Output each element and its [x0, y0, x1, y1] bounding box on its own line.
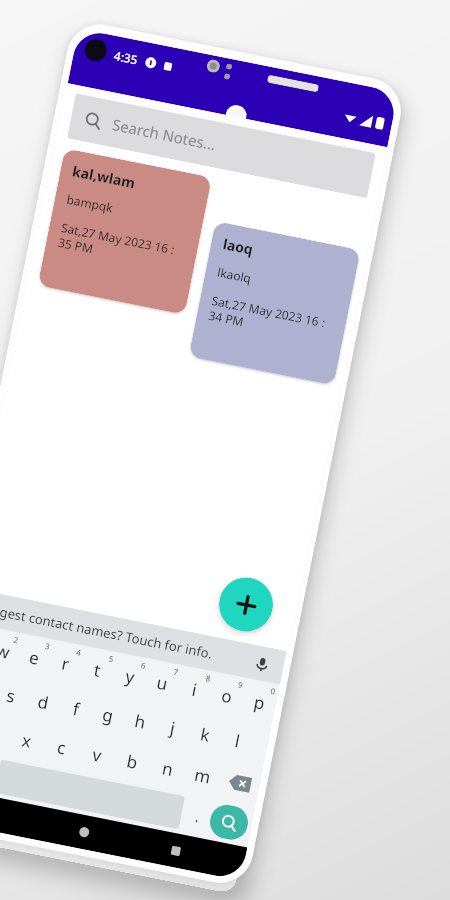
button[interactable]: m [181, 752, 224, 798]
button[interactable]: laoq [188, 221, 361, 385]
staticText: 2 [13, 634, 20, 645]
button[interactable]: Home [75, 823, 94, 841]
staticText: 5 [108, 653, 115, 664]
staticText: e [27, 645, 42, 670]
staticText: bampqk [65, 191, 115, 215]
staticText: l [233, 729, 242, 753]
button[interactable]: c [40, 724, 83, 770]
other: Voice input [253, 655, 271, 673]
staticText: 8 [205, 672, 212, 684]
button[interactable]: Suggest contact names? Touch for info. [0, 587, 287, 685]
staticText: h [133, 709, 148, 734]
staticText: f [71, 697, 81, 720]
staticText: k [199, 722, 213, 747]
button[interactable]: Search [67, 93, 376, 198]
staticText: s [4, 683, 18, 708]
staticText: u [155, 671, 170, 695]
button[interactable]: Add note [214, 573, 278, 636]
button[interactable]: kal,wlam [37, 148, 212, 315]
button[interactable]: Recents [166, 841, 185, 860]
button[interactable]: i [175, 665, 215, 713]
staticText: n [160, 756, 175, 781]
staticText: Sat,27 May 2023 16 : 35 PM [57, 219, 186, 274]
button[interactable]: s [0, 671, 31, 719]
staticText: laoq [221, 234, 255, 259]
button[interactable]: p [239, 678, 280, 726]
staticText: 9 [237, 678, 244, 690]
button[interactable]: y [110, 652, 150, 700]
button[interactable]: k [185, 710, 226, 758]
button[interactable]: t [78, 646, 118, 693]
staticText: j [168, 716, 178, 740]
button[interactable]: h [120, 697, 161, 745]
button[interactable]: x [6, 717, 48, 763]
button[interactable]: j [153, 704, 193, 751]
button[interactable]: d [23, 678, 64, 725]
button[interactable]: Backspace [216, 759, 263, 806]
staticText: t [92, 658, 103, 682]
staticText: y [123, 664, 137, 689]
staticText: i [190, 678, 199, 701]
button[interactable]: b [110, 738, 154, 784]
staticText: . [194, 807, 201, 826]
button[interactable]: Space [0, 759, 185, 830]
staticText: Sat,27 May 2023 16 : 34 PM [207, 292, 335, 347]
staticText: b [125, 749, 140, 774]
staticText: 3 [44, 640, 51, 652]
staticText: o [220, 684, 235, 708]
button[interactable]: r [46, 640, 86, 687]
staticText: 6 [140, 659, 147, 671]
staticText: m [192, 763, 213, 789]
staticText: r [60, 652, 72, 676]
staticText: lkaolq [216, 264, 253, 286]
staticText: p [252, 690, 267, 715]
other: Search [83, 111, 103, 131]
button[interactable]: w [0, 627, 23, 674]
button[interactable]: . [181, 797, 214, 835]
button[interactable]: e [15, 633, 54, 681]
button[interactable]: n [146, 745, 189, 791]
staticText: x [20, 728, 33, 753]
staticText: 4 [75, 646, 82, 658]
staticText: d [36, 690, 51, 714]
staticText: Search Notes... [111, 114, 217, 154]
button[interactable]: g [88, 691, 129, 738]
staticText: c [55, 735, 68, 760]
staticText: 4:35 [113, 47, 139, 67]
staticText: 0 [270, 685, 277, 697]
button[interactable]: u [142, 659, 183, 706]
staticText: g [100, 703, 116, 727]
button[interactable]: o [207, 672, 248, 719]
button[interactable]: l [217, 717, 258, 764]
staticText: w [0, 639, 12, 664]
button[interactable]: Search [207, 802, 251, 843]
button[interactable]: v [75, 731, 118, 777]
button[interactable]: f [56, 684, 96, 732]
staticText: Suggest contact names? Touch for info. [0, 598, 214, 663]
staticText: kal,wlam [71, 161, 137, 192]
staticText: v [90, 742, 104, 767]
staticText: 7 [172, 666, 180, 677]
